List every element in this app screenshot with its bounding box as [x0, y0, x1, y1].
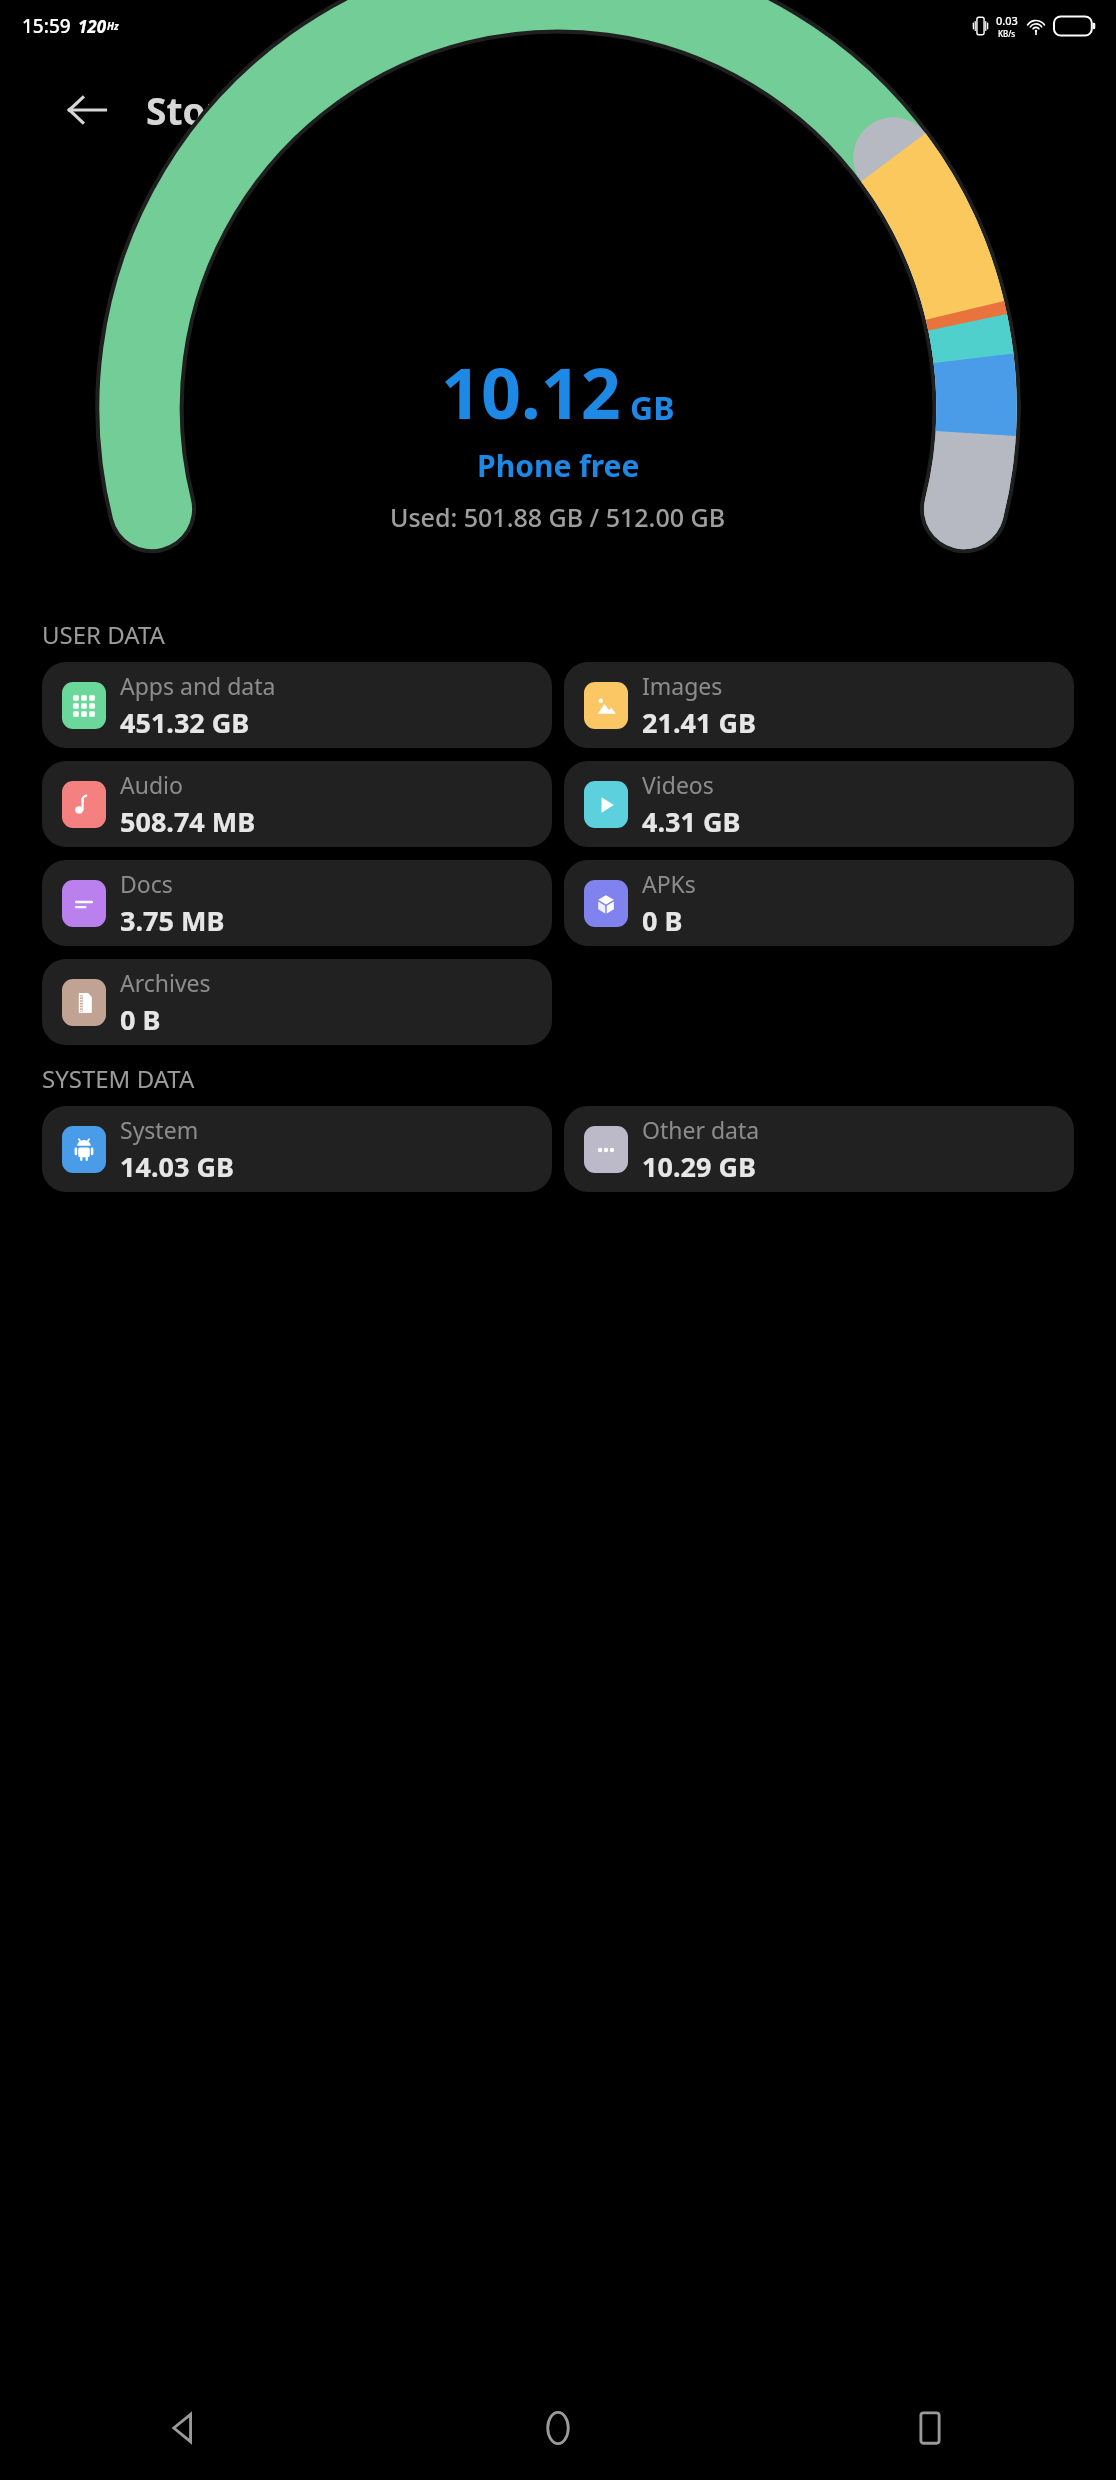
staticText: 0.03: [996, 13, 1018, 28]
staticText: Phone free: [477, 445, 640, 486]
staticText: System: [120, 1114, 199, 1145]
staticText: 21.41 GB: [642, 704, 756, 741]
button[interactable]: Apps and data: [42, 662, 552, 748]
staticText: Other data: [642, 1114, 760, 1145]
staticText: Docs: [120, 868, 173, 899]
staticText: APKs: [642, 868, 696, 899]
staticText: KB/s: [998, 28, 1016, 39]
staticText: 15:59: [22, 13, 71, 39]
staticText: Images: [642, 670, 723, 701]
staticText: Archives: [120, 967, 211, 998]
staticText: Videos: [642, 769, 714, 800]
button[interactable]: Images: [564, 662, 1074, 748]
button[interactable]: Archives: [42, 959, 552, 1045]
staticText: 4.31 GB: [642, 803, 741, 840]
button[interactable]: Videos: [564, 761, 1074, 847]
staticText: 0 B: [120, 1001, 161, 1038]
staticText: 10.29 GB: [642, 1148, 756, 1185]
button[interactable]: Back: [56, 79, 118, 141]
staticText: 14.03 GB: [120, 1148, 234, 1185]
staticText: 0 B: [642, 902, 683, 939]
staticText: Storage: [146, 85, 290, 135]
button[interactable]: Home: [372, 2376, 744, 2480]
staticText: USER DATA: [42, 618, 165, 651]
staticText: SYSTEM DATA: [42, 1062, 195, 1095]
button[interactable]: Docs: [42, 860, 552, 946]
button[interactable]: Audio: [42, 761, 552, 847]
staticText: 3.75 MB: [120, 902, 225, 939]
button[interactable]: Back: [0, 2376, 372, 2480]
staticText: Apps and data: [120, 670, 276, 701]
button[interactable]: APKs: [564, 860, 1074, 946]
staticText: GB: [630, 386, 675, 430]
staticText: 508.74 MB: [120, 803, 256, 840]
staticText: 451.32 GB: [120, 704, 250, 741]
staticText: 10.12: [441, 344, 621, 439]
staticText: Hz: [107, 19, 119, 33]
staticText: 120: [78, 15, 107, 38]
staticText: Used: 501.88 GB / 512.00 GB: [390, 500, 726, 534]
staticText: Audio: [120, 769, 183, 800]
button[interactable]: Recent apps: [744, 2376, 1116, 2480]
button[interactable]: Other data: [564, 1106, 1074, 1192]
button[interactable]: System: [42, 1106, 552, 1192]
